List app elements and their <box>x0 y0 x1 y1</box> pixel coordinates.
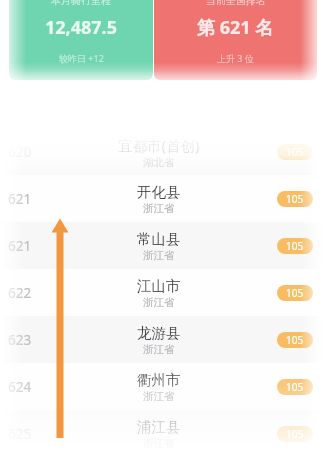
button[interactable]: 624 <box>0 363 324 410</box>
staticText: 当前全国排名 <box>206 0 266 7</box>
staticText: 上升 3 位 <box>217 52 254 64</box>
staticText: 龙游县 <box>137 324 181 342</box>
staticText: 621 <box>8 190 32 208</box>
staticText: 江山市 <box>137 277 181 295</box>
staticText: 浙江省 <box>143 249 175 262</box>
staticText: 开化县 <box>137 183 181 201</box>
button[interactable]: 本月骑行里程 <box>9 0 153 80</box>
button[interactable]: 622 <box>0 269 324 316</box>
staticText: 105 <box>286 286 304 300</box>
staticText: 较昨日 +12 <box>59 52 104 64</box>
staticText: 12,487.5 <box>45 15 117 40</box>
staticText: 浦江县 <box>137 418 181 436</box>
staticText: 621 <box>8 237 32 255</box>
staticText: 105 <box>286 239 304 253</box>
staticText: 本月骑行里程 <box>51 0 111 7</box>
staticText: 624 <box>8 378 32 396</box>
staticText: 浙江省 <box>143 202 175 215</box>
other: Scroll up <box>0 0 324 452</box>
staticText: 623 <box>8 331 32 349</box>
staticText: 105 <box>286 192 304 206</box>
staticText: 622 <box>8 284 32 302</box>
button[interactable]: 621 <box>0 222 324 269</box>
button[interactable]: 623 <box>0 316 324 363</box>
button[interactable]: 621 <box>0 175 324 222</box>
staticText: 浙江省 <box>143 296 175 309</box>
staticText: 常山县 <box>137 230 181 248</box>
staticText: 衢州市 <box>137 371 181 389</box>
staticText: 宜都市(首创) <box>118 135 200 155</box>
button[interactable]: 当前全国排名 <box>154 0 317 80</box>
staticText: 浙江省 <box>143 343 175 356</box>
staticText: 105 <box>286 380 304 394</box>
staticText: 105 <box>286 333 304 347</box>
button[interactable]: 620 <box>0 128 324 175</box>
staticText: 105 <box>286 145 304 159</box>
staticText: 第 621 名 <box>197 15 274 40</box>
staticText: 625 <box>8 425 32 443</box>
button[interactable]: 625 <box>0 410 324 452</box>
staticText: 105 <box>286 427 304 441</box>
staticText: 浙江省 <box>143 390 175 403</box>
staticText: 湖北省 <box>143 156 175 169</box>
